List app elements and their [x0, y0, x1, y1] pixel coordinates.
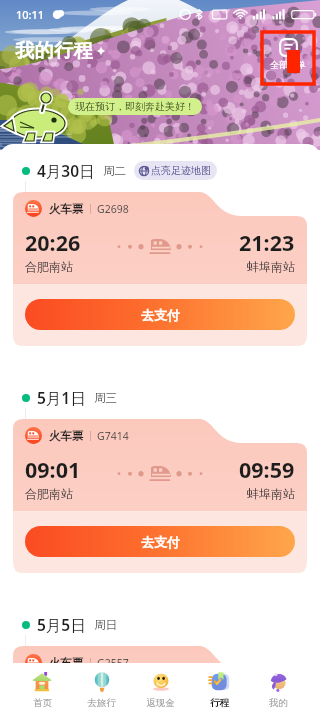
- button[interactable]: 去支付: [25, 526, 295, 557]
- button[interactable]: 火车票: [13, 646, 307, 715]
- staticText: 10:11: [16, 7, 45, 22]
- button[interactable]: 全部订单: [264, 35, 312, 73]
- button[interactable]: 火车票: [13, 192, 307, 346]
- staticText: 我的行程: [15, 39, 93, 63]
- staticText: 我的: [269, 697, 288, 709]
- staticText: 5月1日: [37, 387, 86, 408]
- staticText: 蚌埠南站: [247, 486, 295, 501]
- staticText: 现在预订，即刻奔赴美好！: [75, 100, 195, 113]
- staticText: G2557: [97, 656, 129, 670]
- staticText: 合肥南站: [25, 259, 73, 274]
- button[interactable]: 点亮足迹地图: [134, 161, 217, 180]
- staticText: 09:01: [25, 455, 81, 484]
- button[interactable]: 去支付: [25, 299, 295, 330]
- staticText: 周三: [94, 391, 117, 405]
- staticText: G2698: [97, 202, 129, 216]
- staticText: 4月30日: [37, 160, 95, 181]
- staticText: 火车票: [49, 202, 84, 216]
- button[interactable]: 首页: [12, 663, 72, 715]
- staticText: 09:59: [239, 455, 295, 484]
- staticText: 首页: [33, 697, 52, 709]
- staticText: 5月5日: [37, 614, 86, 635]
- staticText: 蚌埠南站: [247, 259, 295, 274]
- button[interactable]: 我的: [249, 663, 308, 715]
- button[interactable]: 火车票: [13, 419, 307, 573]
- staticText: 合肥南站: [25, 486, 73, 501]
- staticText: 09:00: [239, 682, 295, 711]
- staticText: 行程: [210, 697, 229, 709]
- staticText: 去支付: [141, 307, 180, 323]
- button[interactable]: 去旅行: [72, 663, 131, 715]
- staticText: 去支付: [141, 534, 180, 550]
- staticText: 返现金: [146, 697, 175, 709]
- staticText: 周日: [94, 618, 117, 632]
- staticText: 火车票: [49, 429, 84, 443]
- staticText: 20:26: [25, 228, 81, 257]
- staticText: 去旅行: [87, 697, 116, 709]
- staticText: 08:00: [25, 682, 81, 711]
- staticText: 21:23: [239, 228, 295, 257]
- button[interactable]: 返现金: [131, 663, 190, 715]
- staticText: G7414: [97, 429, 129, 443]
- staticText: 全部订单: [270, 59, 306, 70]
- staticText: 点亮足迹地图: [151, 164, 211, 177]
- button[interactable]: 行程: [190, 663, 249, 715]
- staticText: 周二: [103, 164, 126, 178]
- staticText: 火车票: [49, 656, 84, 670]
